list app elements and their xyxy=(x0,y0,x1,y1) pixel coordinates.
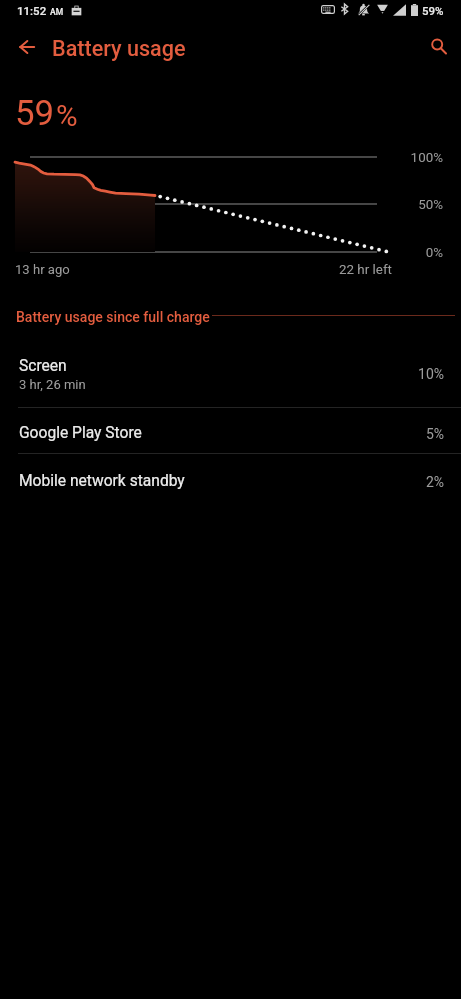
button[interactable]: Back xyxy=(5,25,49,69)
staticText: 10% xyxy=(384,366,444,382)
staticText: 13 hr ago xyxy=(15,262,70,277)
staticText: Battery usage xyxy=(52,36,186,61)
staticText: Google Play Store xyxy=(19,424,142,442)
staticText: 5% xyxy=(384,426,444,442)
staticText: Mobile network standby xyxy=(19,472,185,490)
staticText: % xyxy=(56,99,78,134)
staticText: Battery usage since full charge xyxy=(16,309,210,325)
staticText: 50% xyxy=(383,197,443,213)
staticText: 59% xyxy=(422,4,444,17)
staticText: 2% xyxy=(384,474,444,490)
staticText: 22 hr left xyxy=(332,262,392,278)
staticText: 59 xyxy=(15,93,55,134)
staticText: 0% xyxy=(383,245,443,261)
staticText: 11:52 xyxy=(17,4,47,17)
staticText: AM xyxy=(50,7,64,17)
staticText: Screen xyxy=(19,357,67,375)
button[interactable]: Search xyxy=(419,27,459,67)
staticText: 3 hr, 26 min xyxy=(19,377,86,392)
button[interactable]: Mobile network standby xyxy=(0,453,461,499)
staticText: 100% xyxy=(383,150,443,166)
button[interactable]: Google Play Store xyxy=(0,407,461,453)
button[interactable]: Screen xyxy=(0,345,461,407)
